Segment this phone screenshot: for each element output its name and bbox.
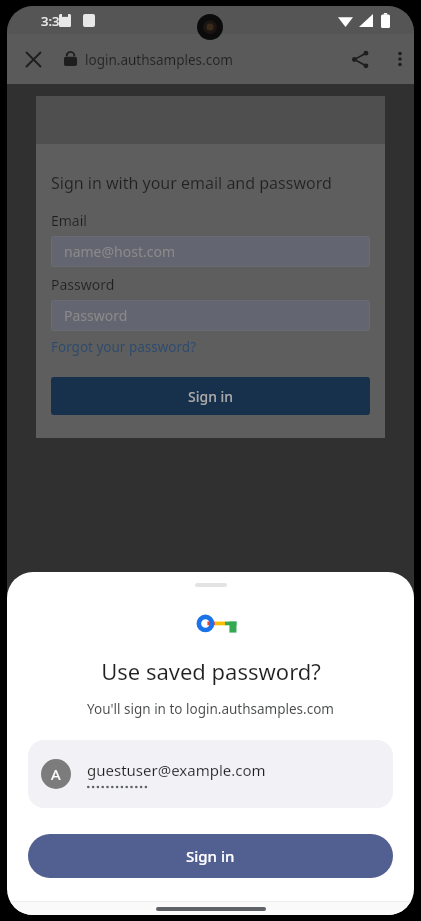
staticText: Sign in (188, 387, 234, 406)
button[interactable]: Close (17, 43, 49, 75)
button[interactable]: A (28, 740, 393, 808)
staticText: Forgot your password? (51, 338, 197, 356)
staticText: Use saved password? (101, 656, 321, 686)
button[interactable]: Password (51, 300, 370, 331)
staticText: Sign in with your email and password (51, 172, 332, 194)
staticText: Password (51, 275, 115, 294)
button[interactable]: More options (384, 43, 414, 75)
button[interactable]: name@host.com (51, 236, 370, 267)
button[interactable]: Sign in (51, 377, 370, 415)
staticText: 3:34 (41, 12, 67, 30)
staticText: Password (64, 306, 128, 325)
staticText: A (51, 764, 61, 784)
button[interactable]: Share (344, 43, 376, 75)
staticText: login.authsamples.com (85, 51, 233, 69)
staticText: Email (51, 211, 87, 230)
button[interactable]: Sign in (28, 834, 393, 878)
staticText: name@host.com (64, 242, 175, 261)
staticText: You'll sign in to login.authsamples.com (87, 700, 334, 718)
staticText: guestuser@example.com (87, 760, 266, 780)
staticText: Sign in (186, 846, 235, 866)
